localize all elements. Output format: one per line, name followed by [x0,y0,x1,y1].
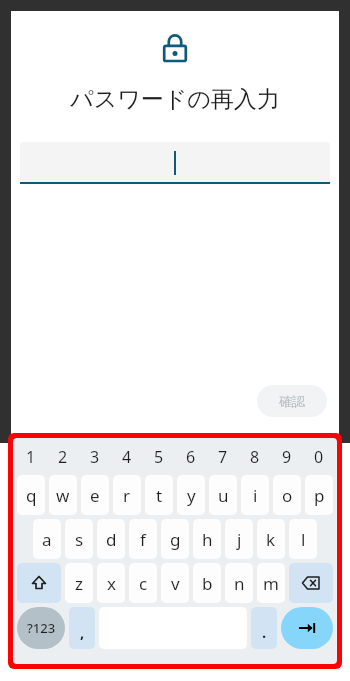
button[interactable]: l [289,519,317,559]
button[interactable]: 9 [271,441,303,473]
staticText: 0 [314,446,324,468]
button[interactable]: 3 [79,441,111,473]
button[interactable]: m [257,563,285,603]
staticText: z [75,572,83,595]
button[interactable]: 6 [175,441,207,473]
button[interactable]: w [49,475,77,515]
button[interactable]: v [161,563,189,603]
staticText: a [42,528,52,551]
staticText: 3 [90,446,100,468]
button[interactable]: , [69,607,95,649]
button[interactable]: i [241,475,269,515]
button[interactable]: s [65,519,93,559]
staticText: v [171,572,180,595]
button[interactable]: 4 [111,441,143,473]
staticText: g [170,528,181,551]
button[interactable]: d [97,519,125,559]
staticText: k [266,528,276,551]
button[interactable]: e [81,475,109,515]
button[interactable]: x [97,563,125,603]
button[interactable]: r [113,475,141,515]
staticText: パスワードの再入力 [49,85,301,114]
button[interactable]: 8 [239,441,271,473]
staticText: 4 [122,446,132,468]
staticText: n [234,572,245,595]
button[interactable]: u [209,475,237,515]
button[interactable]: b [193,563,221,603]
staticText: . [262,622,267,642]
staticText: d [106,528,117,551]
button[interactable]: ?123 [17,607,65,649]
staticText: 1 [26,446,36,468]
staticText: , [80,622,85,642]
staticText: ?123 [27,619,56,637]
staticText: l [301,528,306,551]
button[interactable]: 1 [15,441,47,473]
button[interactable]: z [65,563,93,603]
staticText: 2 [58,446,68,468]
staticText: e [90,484,100,507]
staticText: o [282,484,293,507]
staticText: i [253,484,258,507]
button[interactable]: p [305,475,333,515]
button[interactable]: 2 [47,441,79,473]
button[interactable]: Enter [281,607,333,649]
staticText: t [156,484,163,507]
staticText: 7 [218,446,228,468]
staticText: p [314,484,325,507]
button[interactable]: q [17,475,45,515]
button[interactable]: 確認 [257,385,327,417]
button[interactable]: 5 [143,441,175,473]
button[interactable]: t [145,475,173,515]
staticText: 5 [154,446,164,468]
staticText: c [139,572,148,595]
button[interactable]: n [225,563,253,603]
staticText: m [263,572,279,595]
button[interactable]: Shift [17,563,61,603]
staticText: r [123,484,131,507]
staticText: x [107,572,116,595]
staticText: f [140,528,146,551]
staticText: s [75,528,84,551]
button[interactable]: . [251,607,277,649]
other: Lock [158,31,192,65]
staticText: q [26,484,37,507]
button[interactable]: j [225,519,253,559]
button[interactable]: 0 [303,441,335,473]
staticText: j [237,528,242,551]
button[interactable]: y [177,475,205,515]
button[interactable] [20,142,330,184]
staticText: 8 [250,446,260,468]
button[interactable]: Backspace [289,563,333,603]
button[interactable]: h [193,519,221,559]
staticText: y [187,484,196,507]
button[interactable]: a [33,519,61,559]
staticText: h [202,528,213,551]
button[interactable]: c [129,563,157,603]
button[interactable]: o [273,475,301,515]
staticText: 9 [282,446,292,468]
staticText: u [218,484,229,507]
button[interactable]: 7 [207,441,239,473]
staticText: 6 [186,446,196,468]
staticText: 確認 [279,393,305,409]
button[interactable]: g [161,519,189,559]
staticText: w [56,484,70,507]
button[interactable]: f [129,519,157,559]
staticText: b [202,572,213,595]
button[interactable]: k [257,519,285,559]
